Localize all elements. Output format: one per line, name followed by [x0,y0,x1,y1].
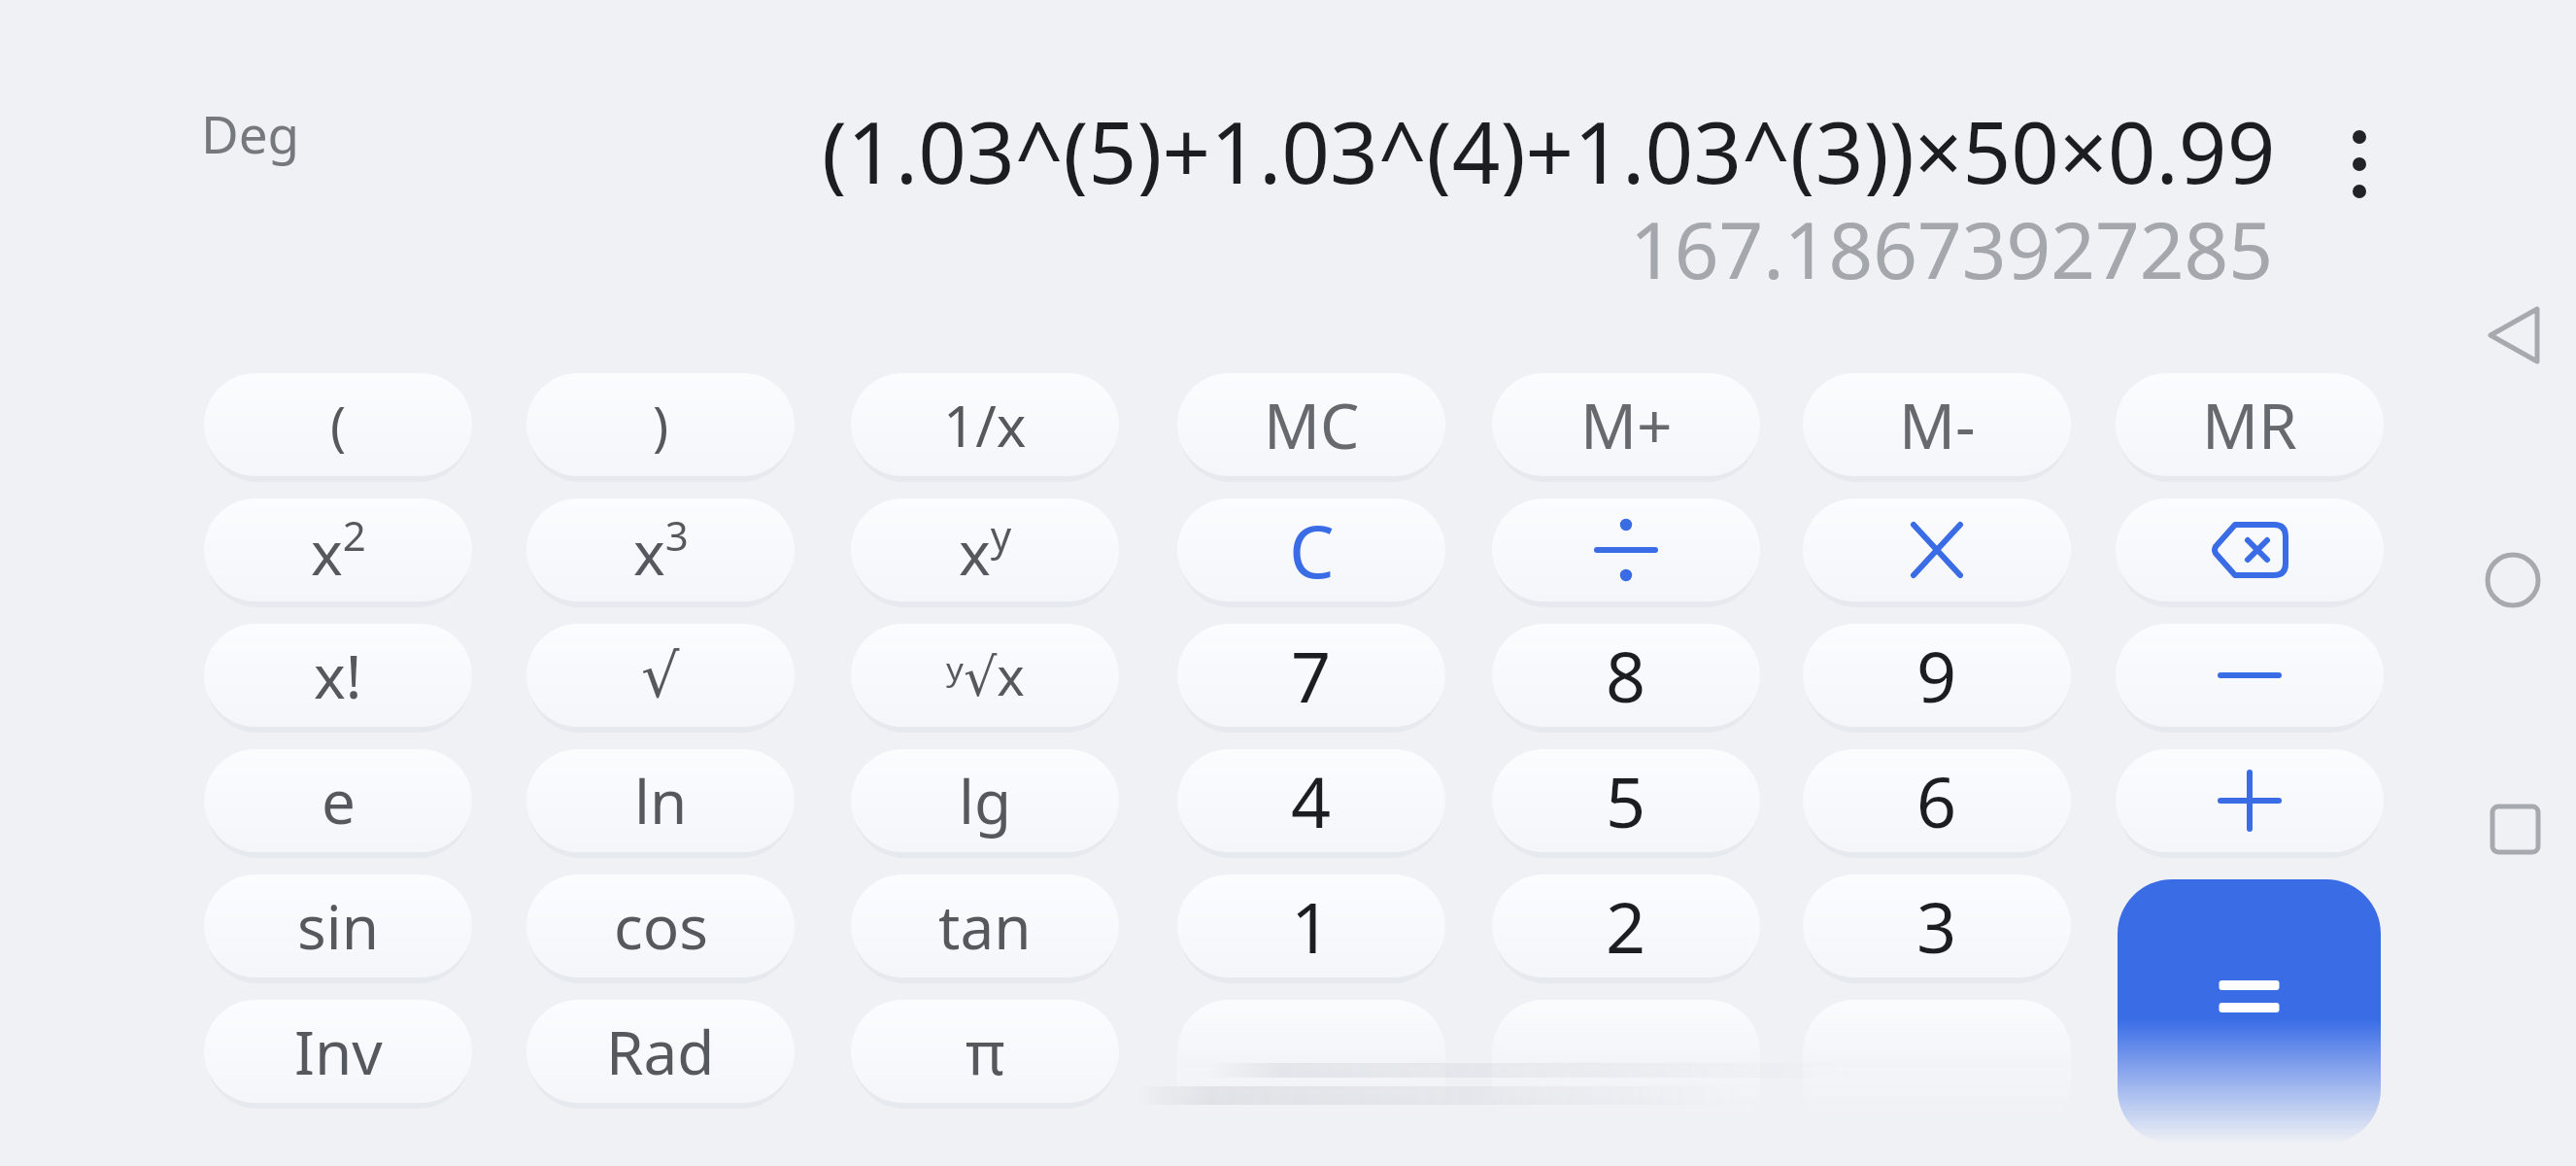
button[interactable] [1803,498,2071,601]
staticText: π [966,1011,1005,1092]
staticText: C [1289,501,1335,600]
staticText: ln [634,760,688,841]
button[interactable]: MR [2116,373,2384,476]
button[interactable]: ln [526,749,795,852]
staticText: lg [959,760,1012,841]
staticText: xy [959,507,1012,593]
button[interactable] [2472,788,2550,870]
button[interactable]: M- [1803,373,2071,476]
staticText: ( [330,389,347,461]
button[interactable] [2331,117,2390,214]
staticText: Rad [606,1011,715,1092]
staticText: 1 [1291,878,1332,974]
button[interactable]: ) [526,373,795,476]
button[interactable]: 9 [1803,624,2071,727]
button[interactable]: 1/x [851,373,1119,476]
button[interactable]: Inv [204,1000,472,1103]
staticText: 9 [1916,628,1957,723]
staticText: 4 [1291,753,1332,848]
staticText: x3 [633,507,689,593]
staticText: tan [938,885,1032,967]
button[interactable]: x2 [204,498,472,601]
button[interactable]: 4 [1177,749,1445,852]
staticText: e [322,760,356,841]
button[interactable]: 2 [1492,874,1760,977]
button[interactable]: 6 [1803,749,2071,852]
staticText: 8 [1606,628,1646,723]
button[interactable]: ʸ√x [851,624,1119,727]
staticText: (1.03^(5)+1.03^(4)+1.03^(3))×50×0.99 [822,93,2276,196]
button[interactable]: tan [851,874,1119,977]
staticText: 7 [1291,628,1332,723]
staticText: sin [297,885,380,967]
staticText: 5 [1606,753,1646,848]
button[interactable]: 8 [1492,624,1760,727]
button[interactable]: MC [1177,373,1445,476]
button[interactable] [2116,624,2384,727]
button[interactable] [2472,301,2550,369]
button[interactable]: 3 [1803,874,2071,977]
staticText: M- [1899,383,1976,467]
staticText: 1/x [943,387,1027,463]
staticText: x2 [311,507,366,593]
button[interactable]: M+ [1492,373,1760,476]
button[interactable]: √ [526,624,795,727]
button[interactable] [2118,879,2381,1144]
staticText: MC [1264,383,1360,467]
staticText: 2 [1606,878,1646,974]
button[interactable] [1492,498,1760,601]
button[interactable]: π [851,1000,1119,1103]
button[interactable]: lg [851,749,1119,852]
button[interactable]: sin [204,874,472,977]
button[interactable]: cos [526,874,795,977]
button[interactable]: ( [204,373,472,476]
staticText: M+ [1580,383,1673,467]
button[interactable]: xy [851,498,1119,601]
button[interactable] [2116,749,2384,852]
staticText: ) [653,389,669,461]
button[interactable] [2116,498,2384,601]
staticText: 167.18673927285 [1630,195,2274,289]
staticText: 3 [1916,878,1957,974]
staticText: cos [614,885,708,967]
button[interactable]: 5 [1492,749,1760,852]
button[interactable]: 1 [1177,874,1445,977]
button[interactable]: C [1177,498,1445,601]
button[interactable]: e [204,749,472,852]
staticText: x! [314,634,362,716]
button[interactable]: x3 [526,498,795,601]
staticText: √ [641,640,680,710]
button[interactable]: 7 [1177,624,1445,727]
button[interactable] [2472,539,2550,621]
button[interactable]: x! [204,624,472,727]
button[interactable]: Rad [526,1000,795,1103]
staticText: MR [2202,383,2297,467]
staticText: Deg [201,98,300,168]
staticText: 6 [1916,753,1957,848]
staticText: Inv [294,1011,383,1092]
staticText: ʸ√x [946,639,1025,711]
